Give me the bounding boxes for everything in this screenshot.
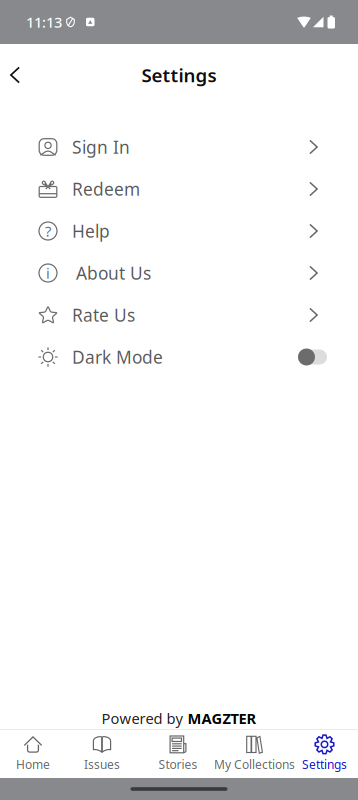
button[interactable]: Issues [66, 730, 138, 778]
button[interactable]: Settings [291, 730, 358, 778]
staticText: ? [45, 221, 51, 241]
button[interactable]: Dark Mode [0, 336, 358, 378]
button[interactable]: i [0, 252, 358, 294]
staticText: My Collections [214, 756, 295, 772]
button[interactable]: Home [0, 730, 66, 778]
staticText: Stories [158, 756, 197, 772]
button[interactable]: Back [0, 58, 30, 92]
staticText: Issues [84, 756, 120, 772]
staticText: Dark Mode [72, 345, 163, 368]
staticText: Settings [302, 756, 347, 772]
staticText: Rate Us [72, 303, 135, 326]
staticText: 11:13 [26, 12, 62, 32]
staticText: MAGZTER [187, 708, 256, 728]
staticText: About Us [76, 261, 151, 284]
button[interactable]: ? [0, 210, 358, 252]
button[interactable]: My Collections [218, 730, 291, 778]
staticText: Redeem [72, 177, 140, 200]
staticText: Help [72, 219, 110, 242]
button[interactable]: Redeem [0, 168, 358, 210]
staticText: Sign In [72, 135, 130, 158]
staticText: Home [16, 756, 50, 772]
button[interactable]: Sign In [0, 126, 358, 168]
staticText: Settings [141, 63, 216, 87]
staticText: Powered by [101, 708, 182, 728]
button[interactable]: Rate Us [0, 294, 358, 336]
button[interactable]: Stories [138, 730, 218, 778]
staticText: i [46, 263, 50, 283]
